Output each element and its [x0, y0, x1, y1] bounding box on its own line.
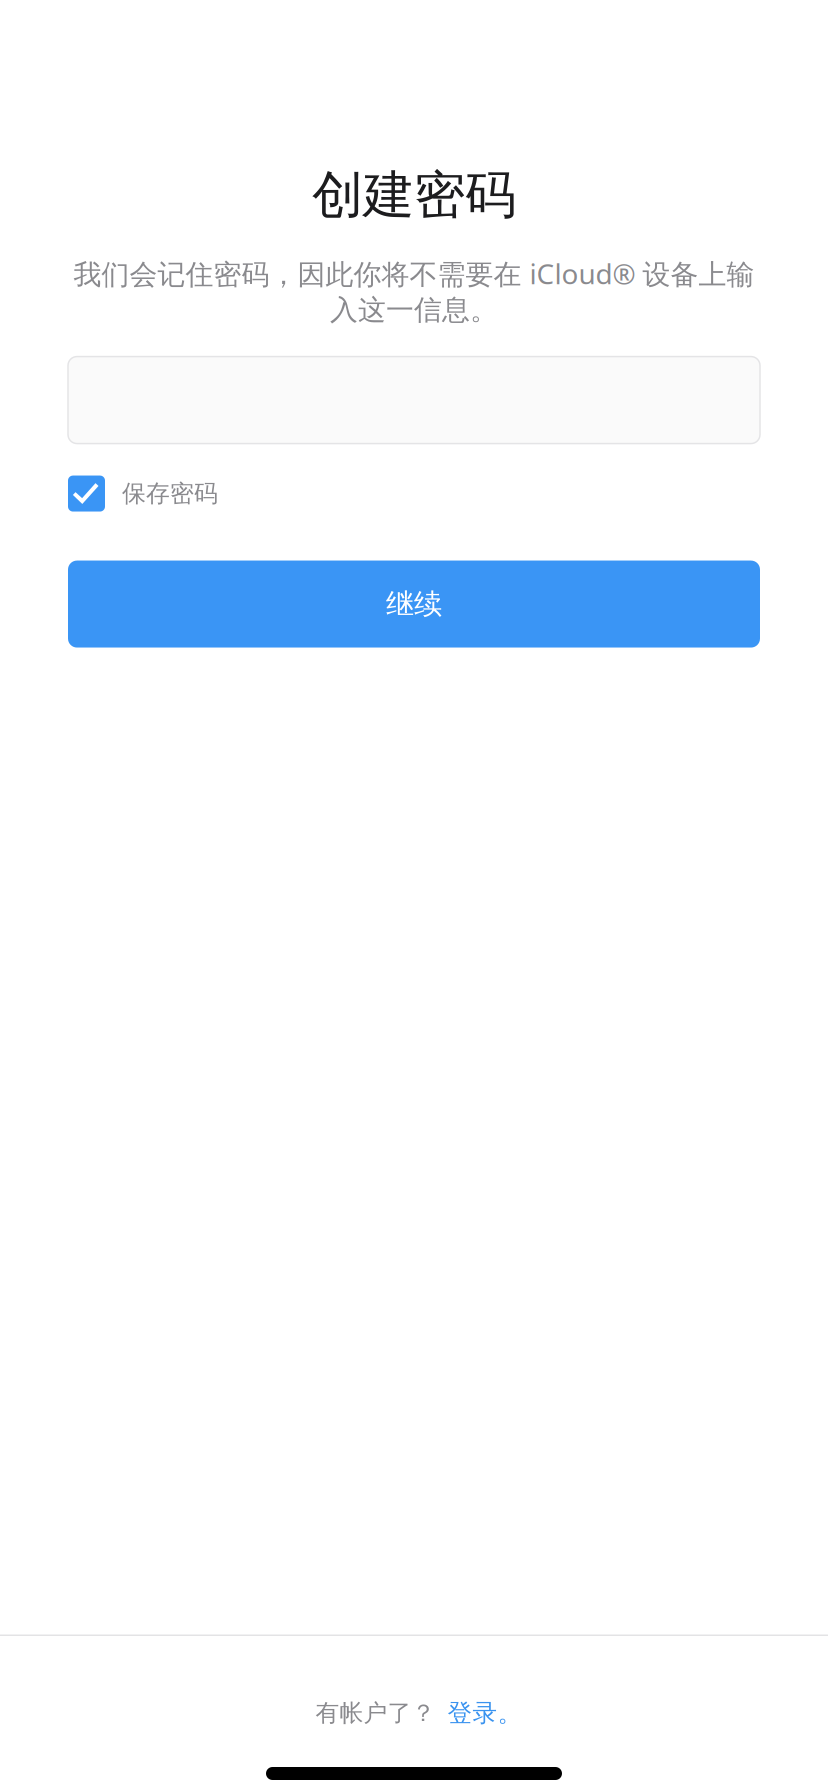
staticText: 我们会记住密码，因此你将不需要在 iCloud® 设备上输	[73, 254, 754, 292]
staticText: 有帐户了？	[315, 1698, 435, 1728]
staticText: 继续	[386, 586, 442, 622]
staticText: 登录。	[447, 1697, 522, 1728]
staticText: 入这一信息。	[330, 292, 498, 328]
staticText: 保存密码	[122, 478, 218, 509]
staticText: 创建密码	[312, 163, 516, 227]
button[interactable]: 继续	[68, 561, 760, 648]
button[interactable]: 保存密码	[68, 476, 760, 512]
button[interactable]: 登录。	[435, 1697, 522, 1728]
